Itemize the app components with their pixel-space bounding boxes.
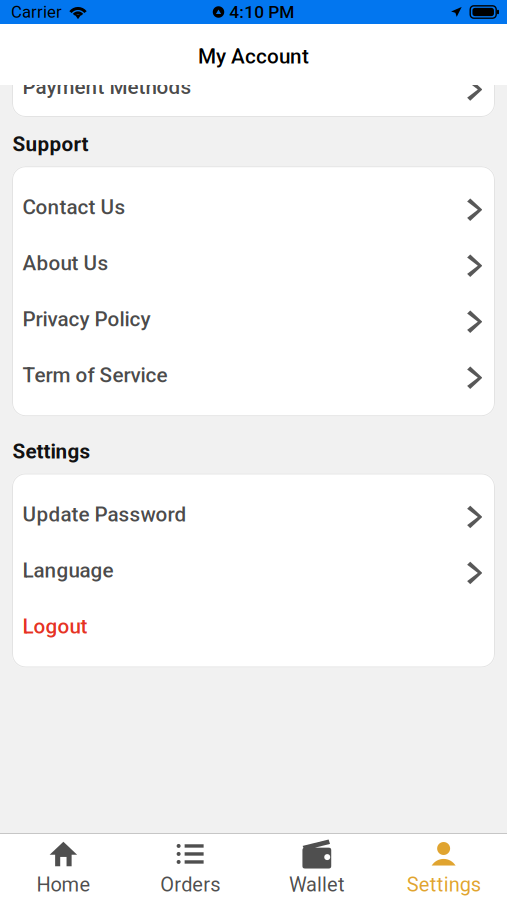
button[interactable]: Home [0, 834, 127, 900]
button[interactable]: Contact Us [12, 179, 495, 235]
staticText: Support [12, 132, 88, 156]
button[interactable]: Logout [12, 598, 495, 654]
button[interactable]: Orders [127, 834, 254, 900]
staticText: Privacy Policy [22, 307, 150, 331]
staticText: My Account [198, 44, 309, 69]
staticText: Orders [160, 873, 220, 896]
staticText: Logout [22, 614, 87, 638]
button[interactable]: Language [12, 542, 495, 598]
button[interactable]: Term of Service [12, 347, 495, 403]
staticText: Settings [407, 873, 481, 896]
button[interactable]: Privacy Policy [12, 291, 495, 347]
button[interactable]: Update Password [12, 486, 495, 542]
staticText: 4:10 PM [229, 2, 294, 22]
staticText: About Us [22, 251, 108, 275]
staticText: Contact Us [22, 195, 125, 219]
staticText: Term of Service [22, 363, 167, 387]
button[interactable]: Wallet [253, 834, 380, 900]
staticText: Payment Methods [22, 75, 191, 99]
staticText: Update Password [22, 502, 186, 526]
staticText: Wallet [289, 873, 345, 896]
staticText: Carrier [11, 2, 62, 22]
button[interactable]: Payment Methods [12, 65, 495, 109]
staticText: Home [36, 873, 90, 896]
staticText: Settings [12, 439, 90, 463]
button[interactable]: About Us [12, 235, 495, 291]
button[interactable]: Settings [380, 834, 507, 900]
staticText: Language [22, 558, 113, 582]
